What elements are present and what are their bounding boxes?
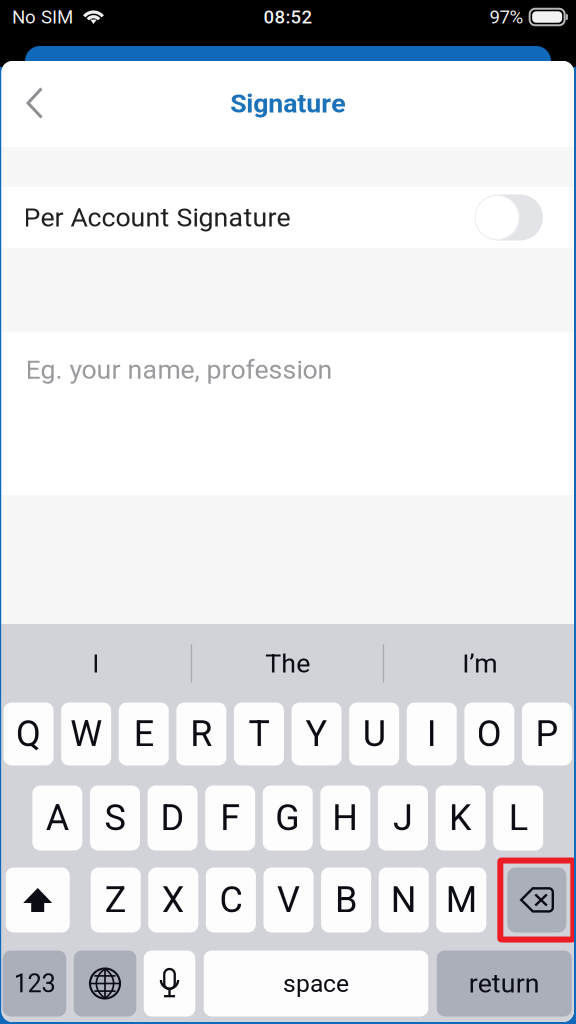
button[interactable]: Z [91,867,141,932]
staticText: V [277,879,300,921]
staticText: 123 [13,969,55,998]
staticText: A [46,797,69,839]
staticText: T [248,713,269,755]
button[interactable]: return [437,950,572,1016]
staticText: C [219,879,242,921]
staticText: D [161,797,185,839]
staticText: return [469,968,540,999]
button[interactable]: O [464,702,514,765]
staticText: L [509,797,528,839]
button[interactable]: 123 [3,950,66,1016]
staticText: K [449,797,472,839]
button[interactable]: Per Account Signature [475,194,543,240]
button[interactable]: G [263,785,313,850]
staticText: 08:52 [263,6,312,28]
button[interactable]: C [206,867,256,932]
staticText: N [391,879,417,921]
staticText: P [535,713,558,755]
staticText: G [275,797,300,839]
staticText: I [92,648,99,679]
button[interactable]: Delete [500,860,573,939]
staticText: M [446,879,477,921]
staticText: H [332,797,358,839]
staticText: I’m [462,648,497,679]
staticText: No SIM [12,6,73,28]
staticText: J [393,797,413,839]
staticText: E [134,713,154,755]
button[interactable]: J [378,785,428,850]
button[interactable]: S [90,785,140,850]
staticText: Signature [230,88,345,119]
staticText: R [190,713,212,755]
button[interactable]: space [204,950,428,1016]
staticText: Per Account Signature [23,202,290,233]
staticText: Q [16,713,41,755]
button[interactable]: Q [4,702,54,765]
staticText: Eg. your name, profession [25,354,332,385]
button[interactable]: L [493,785,543,850]
button[interactable]: E [119,702,169,765]
button[interactable]: X [148,867,198,932]
button[interactable]: W [61,702,111,765]
button[interactable]: M [436,867,486,932]
button[interactable]: Dictate [144,950,195,1016]
button[interactable]: I [407,702,457,765]
staticText: U [363,713,386,755]
button[interactable]: R [176,702,226,765]
staticText: Y [306,713,328,755]
button[interactable]: B [321,867,371,932]
button[interactable]: Back [1,68,65,138]
button[interactable]: N [379,867,429,932]
button[interactable]: Shift [6,867,70,932]
staticText: The [265,648,310,679]
staticText: B [335,879,357,921]
staticText: O [477,713,502,755]
button[interactable]: H [320,785,370,850]
button[interactable]: Next keyboard [74,950,136,1016]
button[interactable]: P [522,702,572,765]
staticText: Z [105,879,127,921]
button[interactable]: U [349,702,399,765]
button[interactable]: D [148,785,198,850]
staticText: S [104,797,125,839]
staticText: X [162,879,185,921]
button[interactable]: T [234,702,284,765]
staticText: I [427,713,437,755]
staticText: W [70,713,102,755]
button[interactable]: Y [292,702,342,765]
button[interactable]: The [192,634,384,693]
button[interactable]: I’m [384,634,576,693]
staticText: 97% [489,6,523,28]
staticText: F [220,797,240,839]
button[interactable]: A [32,785,82,850]
button[interactable]: K [436,785,486,850]
staticText: space [283,969,349,998]
button[interactable]: F [205,785,255,850]
button[interactable]: V [263,867,313,932]
button[interactable]: I [0,634,192,693]
